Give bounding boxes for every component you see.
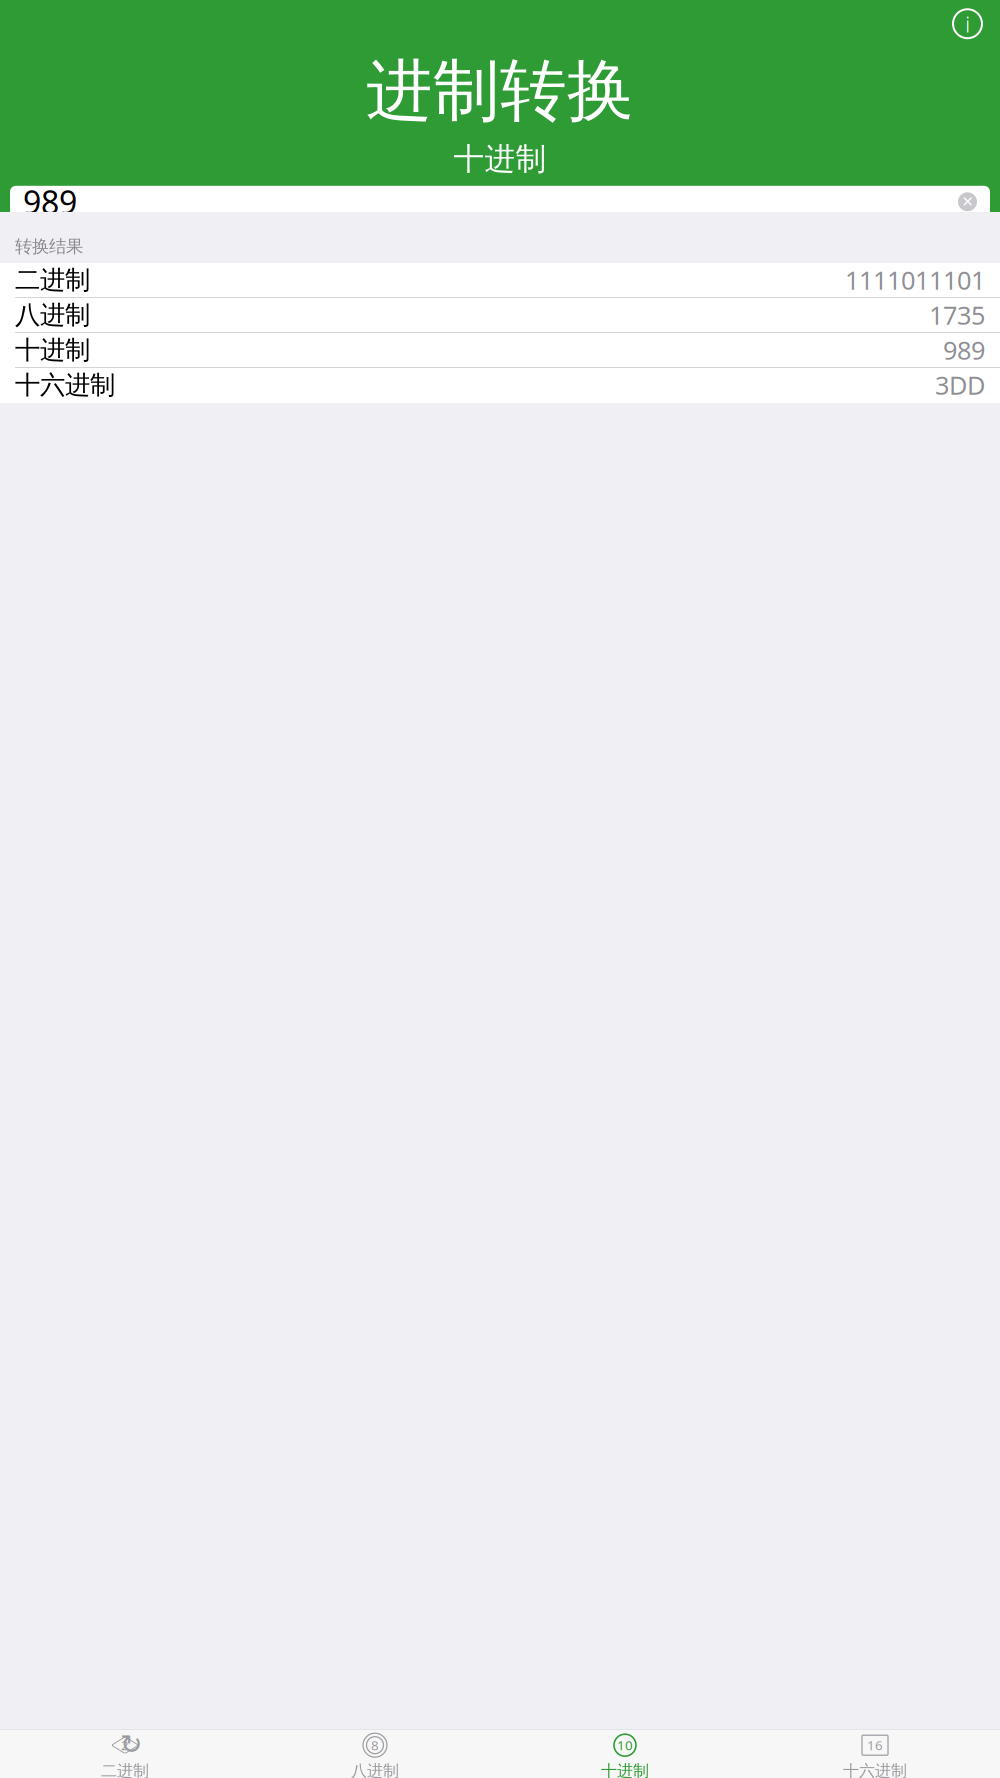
staticText: 989 [943,333,985,367]
staticText: 16 [867,1736,883,1754]
staticText: 十进制 [15,334,90,365]
button[interactable]: 十进制 [0,333,1000,368]
staticText: 3DD [935,368,985,402]
staticText: 989 [23,180,77,223]
button[interactable]: 关于 [947,3,988,44]
button[interactable]: 10 [500,1727,750,1778]
button[interactable]: ↻ [0,1727,250,1778]
staticText: 十六进制 [843,1761,907,1778]
button[interactable]: 8 [250,1727,500,1778]
staticText: 8 [371,1736,379,1754]
staticText: 八进制 [15,299,90,330]
button[interactable]: 二进制 [0,263,1000,298]
button[interactable]: 16 [750,1727,1000,1778]
button[interactable]: 十六进制 [0,368,1000,403]
staticText: 1111011101 [845,263,985,297]
staticText: 十进制 [601,1761,649,1778]
staticText: 八进制 [351,1761,399,1778]
staticText: 10 [617,1736,633,1754]
staticText: i [965,9,970,39]
staticText: 1735 [929,298,985,332]
staticText: 二进制 [15,264,90,295]
staticText: 十进制 [453,140,546,178]
staticText: 十六进制 [15,369,115,400]
staticText: ✕ [961,193,973,210]
staticText: 2 [121,1736,129,1754]
staticText: 进制转换 [366,50,634,132]
button[interactable]: 989 [10,186,990,218]
button[interactable]: 八进制 [0,298,1000,333]
staticText: 转换结果 [15,236,83,257]
staticText: ↻ [120,1729,142,1759]
staticText: 二进制 [101,1761,149,1778]
